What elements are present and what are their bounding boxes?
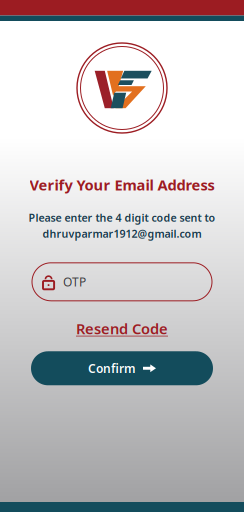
staticText: Please enter the 4 digit code sent to [28,210,215,225]
button[interactable]: Resend Code [76,319,168,338]
staticText: dhruvparmar1912@gmail.com [42,227,201,241]
staticText: OTP [63,274,86,290]
staticText: Verify Your Email Address [29,175,214,194]
button[interactable]: Confirm [31,351,213,385]
staticText: Resend Code [76,319,168,338]
staticText: Confirm [88,360,136,376]
